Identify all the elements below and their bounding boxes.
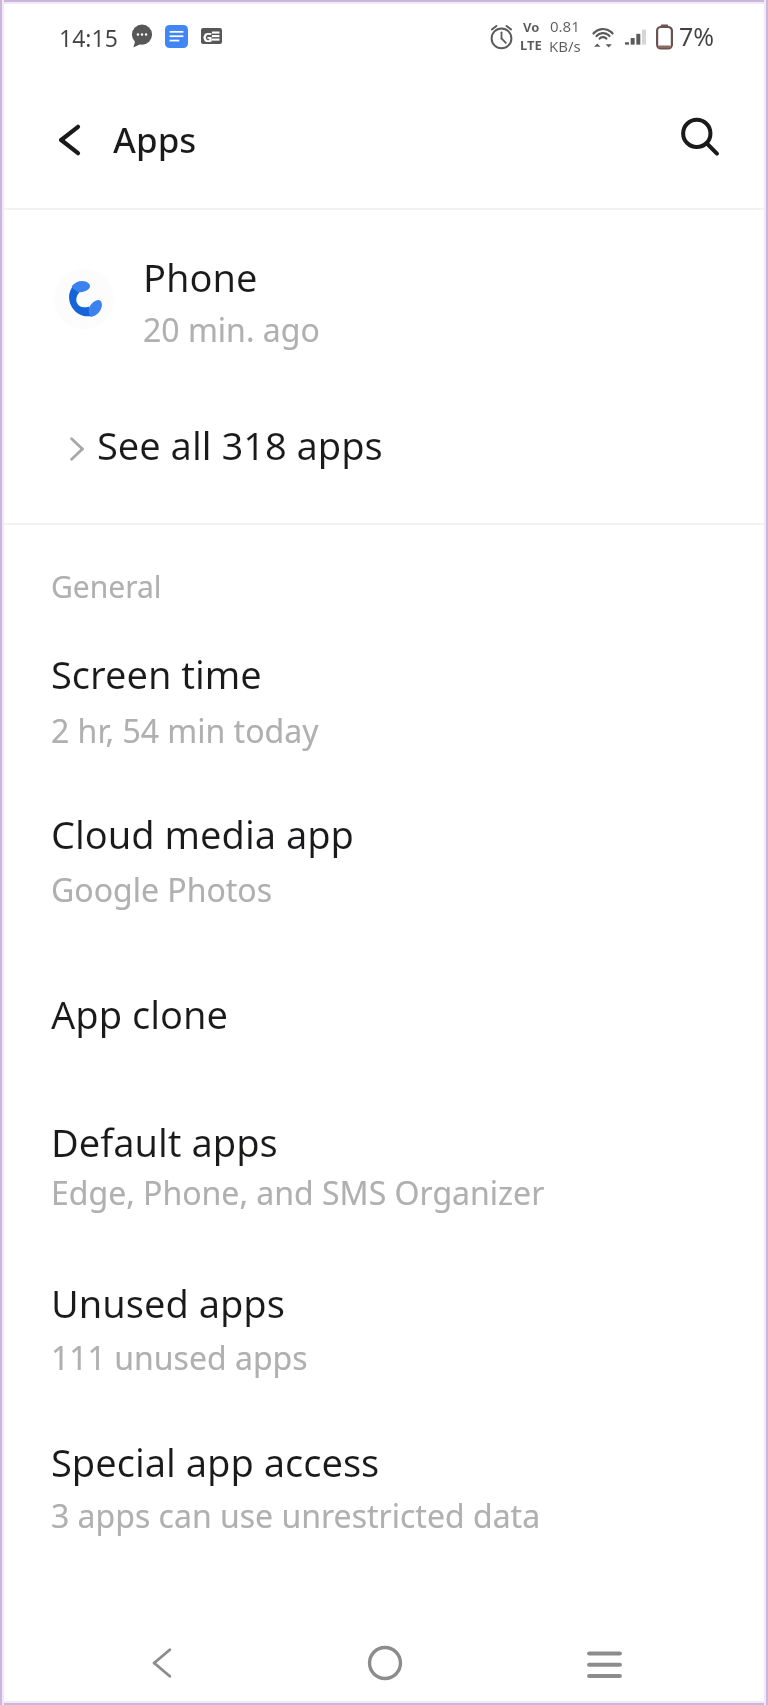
- staticText: Unused apps: [51, 1277, 285, 1329]
- staticText: 7%: [679, 19, 715, 53]
- staticText: Google Photos: [51, 868, 273, 912]
- staticText: Default apps: [51, 1116, 278, 1168]
- staticText: Screen time: [51, 648, 262, 700]
- button[interactable]: Search: [671, 108, 731, 168]
- button[interactable]: Screen time: [0, 618, 768, 761]
- staticText: General: [51, 566, 162, 607]
- button[interactable]: Back: [40, 110, 100, 170]
- staticText: Vo: [523, 18, 540, 36]
- staticText: App clone: [51, 988, 228, 1040]
- button[interactable]: App clone: [0, 958, 768, 1043]
- button[interactable]: See all 318 apps: [0, 400, 768, 500]
- staticText: LTE: [520, 36, 542, 54]
- button[interactable]: Phone: [0, 224, 768, 370]
- staticText: Edge, Phone, and SMS Organizer: [51, 1171, 545, 1215]
- button[interactable]: Default apps: [0, 1086, 768, 1223]
- staticText: 111 unused apps: [51, 1336, 308, 1380]
- button[interactable]: Back: [113, 1613, 213, 1705]
- staticText: See all 318 apps: [97, 419, 383, 471]
- button[interactable]: Home: [335, 1613, 435, 1705]
- staticText: 3 apps can use unrestricted data: [51, 1494, 541, 1538]
- button[interactable]: Special app access: [0, 1406, 768, 1546]
- staticText: 0.81: [550, 16, 580, 36]
- staticText: G: [203, 28, 213, 44]
- staticText: Cloud media app: [51, 808, 354, 860]
- staticText: 14:15: [59, 22, 118, 53]
- button[interactable]: Recent apps: [554, 1613, 654, 1705]
- staticText: Apps: [113, 116, 197, 164]
- staticText: Special app access: [51, 1436, 380, 1488]
- staticText: Phone: [143, 251, 258, 303]
- button[interactable]: Cloud media app: [0, 778, 768, 920]
- staticText: 20 min. ago: [143, 308, 320, 352]
- staticText: KB/s: [549, 36, 581, 56]
- button[interactable]: Unused apps: [0, 1247, 768, 1388]
- staticText: 2 hr, 54 min today: [51, 709, 319, 753]
